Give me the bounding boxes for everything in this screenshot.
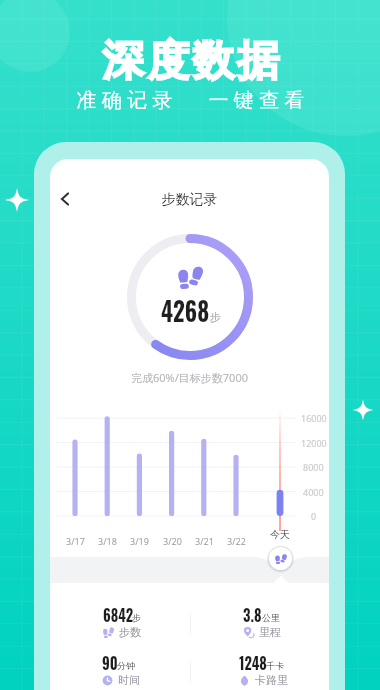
staticText: 0 (311, 510, 317, 522)
staticText: 公里 (262, 612, 280, 623)
staticText: 深度数据 (2, 35, 380, 88)
staticText: 准确记录 一键查看 (3, 86, 380, 113)
staticText: 4268 (161, 290, 209, 330)
staticText: 3/19 (130, 535, 149, 547)
staticText: 3/20 (163, 535, 182, 547)
staticText: 16000 (301, 412, 327, 424)
staticText: 3/18 (98, 535, 117, 547)
staticText: 今天 (270, 528, 290, 541)
staticText: 步数记录 (50, 191, 329, 209)
staticText: 3/22 (227, 535, 246, 547)
staticText: 4000 (303, 486, 324, 498)
staticText: 90 (102, 650, 118, 675)
staticText: 完成60%/目标步数7000 (50, 370, 329, 385)
staticText: 3/21 (195, 535, 214, 547)
staticText: 时间 (118, 673, 140, 687)
staticText: 6842 (103, 602, 134, 627)
staticText: 步 (132, 612, 141, 623)
button[interactable]: Back (51, 185, 79, 213)
staticText: 3/17 (66, 535, 85, 547)
staticText: 12000 (301, 437, 327, 449)
staticText: 千卡 (266, 660, 284, 671)
staticText: 3.8 (243, 602, 262, 627)
staticText: 8000 (303, 461, 324, 473)
staticText: 步数 (119, 625, 141, 639)
staticText: 里程 (259, 625, 281, 639)
staticText: 1248 (239, 650, 267, 675)
staticText: 步 (210, 310, 221, 324)
button[interactable]: Steps (269, 547, 292, 570)
staticText: 分钟 (117, 660, 135, 671)
staticText: 卡路里 (255, 673, 288, 687)
